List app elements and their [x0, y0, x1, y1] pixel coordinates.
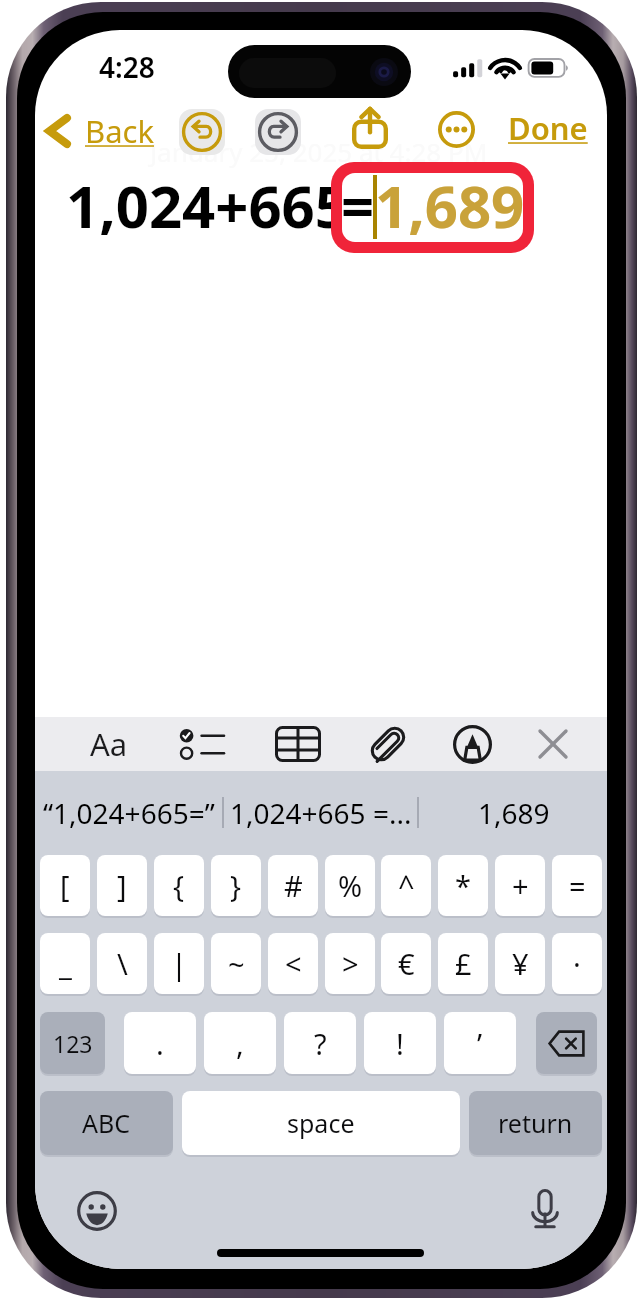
button[interactable]: <: [268, 933, 318, 994]
button[interactable]: Redo: [255, 109, 301, 155]
staticText: \: [117, 944, 128, 983]
staticText: +: [512, 866, 529, 905]
staticText: €: [398, 944, 415, 983]
button[interactable]: 1,689: [420, 771, 607, 854]
button[interactable]: ,: [204, 1012, 276, 1074]
button[interactable]: Emoji: [62, 1183, 132, 1239]
staticText: return: [498, 1106, 573, 1140]
button[interactable]: Table: [269, 719, 327, 769]
staticText: 1,689: [478, 794, 550, 832]
button[interactable]: ~: [211, 933, 261, 994]
button[interactable]: ABC: [40, 1091, 173, 1155]
button[interactable]: +: [495, 855, 545, 916]
staticText: ]: [117, 866, 127, 905]
staticText: £: [455, 944, 472, 983]
staticText: ¥: [512, 944, 529, 983]
button[interactable]: Back: [45, 105, 154, 157]
staticText: Back: [85, 110, 154, 152]
staticText: 1,024+665: [66, 166, 348, 245]
staticText: 1,024+665 =...: [230, 794, 412, 832]
button[interactable]: ·: [552, 933, 602, 994]
button[interactable]: ^: [381, 855, 431, 916]
button[interactable]: .: [124, 1012, 196, 1074]
staticText: {: [173, 866, 185, 905]
button[interactable]: Undo: [179, 109, 225, 155]
button[interactable]: !: [364, 1012, 436, 1074]
button[interactable]: ?: [284, 1012, 356, 1074]
staticText: ’: [477, 1024, 483, 1063]
button[interactable]: “1,024+665=”: [35, 771, 223, 854]
staticText: Aa: [90, 723, 128, 765]
button[interactable]: Share: [344, 102, 396, 154]
button[interactable]: €: [381, 933, 431, 994]
button[interactable]: _: [40, 933, 90, 994]
staticText: [: [60, 866, 70, 905]
staticText: ·: [573, 944, 581, 983]
staticText: >: [342, 944, 359, 983]
staticText: !: [396, 1024, 404, 1063]
staticText: =: [341, 166, 375, 245]
button[interactable]: =: [552, 855, 602, 916]
staticText: |: [171, 944, 187, 983]
button[interactable]: More options: [434, 107, 479, 152]
staticText: ?: [314, 1024, 327, 1063]
staticText: }: [230, 866, 242, 905]
button[interactable]: 123: [40, 1012, 105, 1074]
button[interactable]: [: [40, 855, 90, 916]
button[interactable]: Attach file: [359, 719, 417, 769]
staticText: *: [455, 866, 471, 905]
button[interactable]: >: [325, 933, 375, 994]
staticText: January 25, 2025 at 4:28 PM: [150, 134, 488, 169]
staticText: Done: [508, 107, 588, 149]
button[interactable]: space: [182, 1091, 460, 1155]
staticText: 4:28: [99, 48, 155, 86]
staticText: _: [59, 944, 72, 983]
button[interactable]: return: [469, 1091, 602, 1155]
button[interactable]: \: [97, 933, 147, 994]
staticText: 1,689: [375, 166, 525, 245]
button[interactable]: }: [211, 855, 261, 916]
staticText: ,: [236, 1024, 244, 1063]
staticText: .: [156, 1024, 164, 1063]
staticText: #: [284, 866, 303, 905]
staticText: space: [287, 1106, 355, 1140]
button[interactable]: {: [154, 855, 204, 916]
button[interactable]: Markup: [443, 719, 501, 769]
staticText: ~: [228, 944, 245, 983]
button[interactable]: £: [438, 933, 488, 994]
button[interactable]: |: [154, 933, 204, 994]
button[interactable]: ¥: [495, 933, 545, 994]
button[interactable]: ’: [444, 1012, 516, 1074]
button[interactable]: Dictate: [510, 1182, 580, 1238]
staticText: “1,024+665=”: [43, 794, 215, 832]
button[interactable]: *: [438, 855, 488, 916]
button[interactable]: Hide keyboard: [524, 719, 582, 769]
button[interactable]: Backspace: [536, 1012, 597, 1074]
button[interactable]: Done: [505, 106, 591, 150]
staticText: <: [285, 944, 302, 983]
staticText: %: [338, 866, 363, 905]
button[interactable]: Text format: [80, 719, 138, 769]
button[interactable]: ]: [97, 855, 147, 916]
staticText: ABC: [82, 1106, 131, 1140]
button[interactable]: %: [325, 855, 375, 916]
staticText: =: [569, 866, 586, 905]
button[interactable]: #: [268, 855, 318, 916]
staticText: 123: [53, 1028, 93, 1059]
button[interactable]: 1,024+665 =...: [226, 771, 415, 854]
button[interactable]: Checklist: [172, 719, 230, 769]
staticText: ^: [398, 866, 415, 905]
